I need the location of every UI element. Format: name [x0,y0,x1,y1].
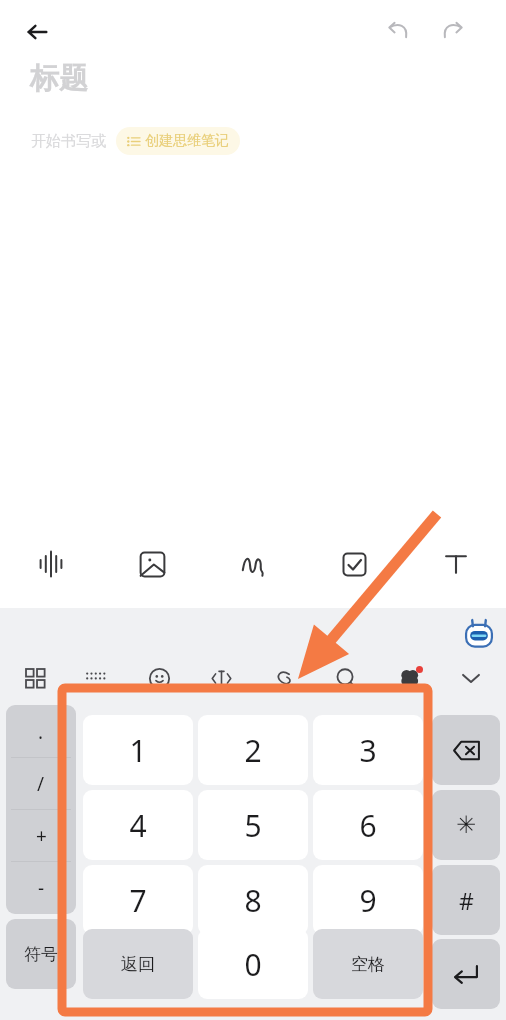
staticText: 1 [129,730,147,771]
button[interactable]: Back [14,8,62,56]
button[interactable]: Cursor [199,656,243,700]
button[interactable]: 5 [198,790,308,860]
staticText: 6 [359,805,377,846]
staticText: 符号 [24,944,58,965]
staticText: 空格 [351,954,385,975]
button[interactable]: Hash [432,865,500,935]
staticText: / [37,771,45,797]
staticText: # [459,885,474,916]
button[interactable]: 3 [313,715,423,785]
staticText: . [38,719,44,745]
staticText: 0 [244,944,262,985]
button[interactable]: 空格 [313,929,423,999]
button[interactable]: Search [324,656,368,700]
staticText: 创建思维笔记 [145,132,229,150]
staticText: 标题 [30,60,88,97]
button[interactable]: Emoji [137,656,181,700]
button[interactable]: 9 [313,865,423,935]
staticText: 8 [244,880,262,921]
button[interactable]: 8 [198,865,308,935]
button[interactable]: Star [432,790,500,860]
staticText: 3 [359,730,377,771]
staticText: 9 [359,880,377,921]
button[interactable]: 返回 [83,929,193,999]
button[interactable]: Delete [432,715,500,785]
button[interactable]: 4 [83,790,193,860]
staticText: 返回 [121,954,155,975]
button[interactable]: 2 [198,715,308,785]
staticText: 2 [244,730,262,771]
button[interactable]: Image [102,520,203,608]
button[interactable]: Draw [203,520,304,608]
staticText: 开始书写或 [31,132,106,151]
button[interactable]: Todo [304,520,405,608]
button[interactable]: Keyboard layout [74,656,118,700]
button[interactable]: 创建思维笔记 [116,127,240,155]
staticText: ✳ [456,811,477,839]
button[interactable]: 0 [198,929,308,999]
staticText: - [38,875,45,901]
staticText: 4 [129,805,147,846]
button[interactable]: 6 [313,790,423,860]
button[interactable]: . [6,705,76,758]
button[interactable]: Undo [375,8,419,52]
staticText: 5 [244,805,262,846]
button[interactable]: - [6,862,76,914]
button[interactable]: 1 [83,715,193,785]
button[interactable]: / [6,758,76,810]
button[interactable]: Voice [0,520,102,608]
staticText: 7 [129,880,147,921]
button[interactable]: 7 [83,865,193,935]
button[interactable]: + [6,810,76,862]
button[interactable]: Clip [262,656,306,700]
button[interactable]: Enter [432,939,500,1009]
button[interactable]: 符号 [6,919,76,989]
button[interactable]: Redo [432,8,476,52]
staticText: + [36,823,47,849]
button[interactable]: Assistant [458,612,500,654]
button[interactable]: Collapse [449,656,493,700]
button[interactable]: Theme [387,656,431,700]
button[interactable]: Apps [13,656,57,700]
button[interactable]: Text [405,520,506,608]
